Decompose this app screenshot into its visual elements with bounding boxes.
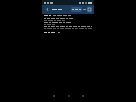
button[interactable]: Recent apps: [79, 92, 86, 99]
button[interactable]: Search field: [71, 7, 82, 12]
button[interactable]: Home: [65, 92, 72, 99]
button[interactable]: [44, 32, 60, 33]
button[interactable]: Back: [50, 92, 57, 99]
button[interactable]: [44, 18, 73, 19]
button[interactable]: More options: [87, 6, 92, 13]
button[interactable]: Back: [44, 6, 51, 13]
button[interactable]: [44, 15, 92, 16]
